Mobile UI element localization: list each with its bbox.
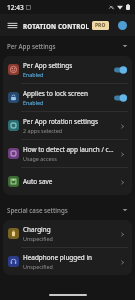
button[interactable]: Auto save [3,168,132,195]
staticText: PRO [95,22,106,29]
button[interactable]: How to detect app launch / close [3,140,132,167]
button[interactable]: Per App rotation settings [3,112,132,139]
button[interactable]: Open [117,149,127,159]
staticText: 12:43 [7,3,24,12]
staticText: Enabled [23,71,44,78]
staticText: Charging [23,225,51,234]
staticText: Special case settings [7,206,68,214]
button[interactable]: Toggle [114,94,127,102]
button[interactable]: Charging [3,220,132,247]
staticText: Enabled [23,99,44,106]
button[interactable]: Open [117,121,127,131]
staticText: Unspecified [23,235,53,242]
button[interactable]: Toggle [114,66,127,74]
button[interactable]: Headphone plugged in [3,248,132,275]
button[interactable]: Open [117,229,127,239]
button[interactable]: Special case settings [0,203,135,217]
staticText: Unspecified [23,263,53,270]
button[interactable]: Per App settings [0,39,135,53]
staticText: 2 apps selected [23,127,63,134]
staticText: Headphone plugged in [23,253,92,262]
staticText: How to detect app launch / close [23,145,114,154]
button[interactable]: Per App settings [3,56,132,83]
button[interactable]: Open [117,257,127,267]
button[interactable]: Open [117,177,127,187]
staticText: Per App rotation settings [23,117,98,126]
button[interactable]: Master rotation toggle [113,16,131,34]
staticText: Per App settings [23,61,73,70]
button[interactable]: Menu [4,17,20,33]
staticText: ROTATION CONTROL [23,22,90,30]
staticText: Applies to lock screen [23,89,88,98]
staticText: Usage access [23,155,57,162]
staticText: Auto save [23,177,53,186]
staticText: Per App settings [7,42,56,50]
button[interactable]: Applies to lock screen [3,84,132,111]
